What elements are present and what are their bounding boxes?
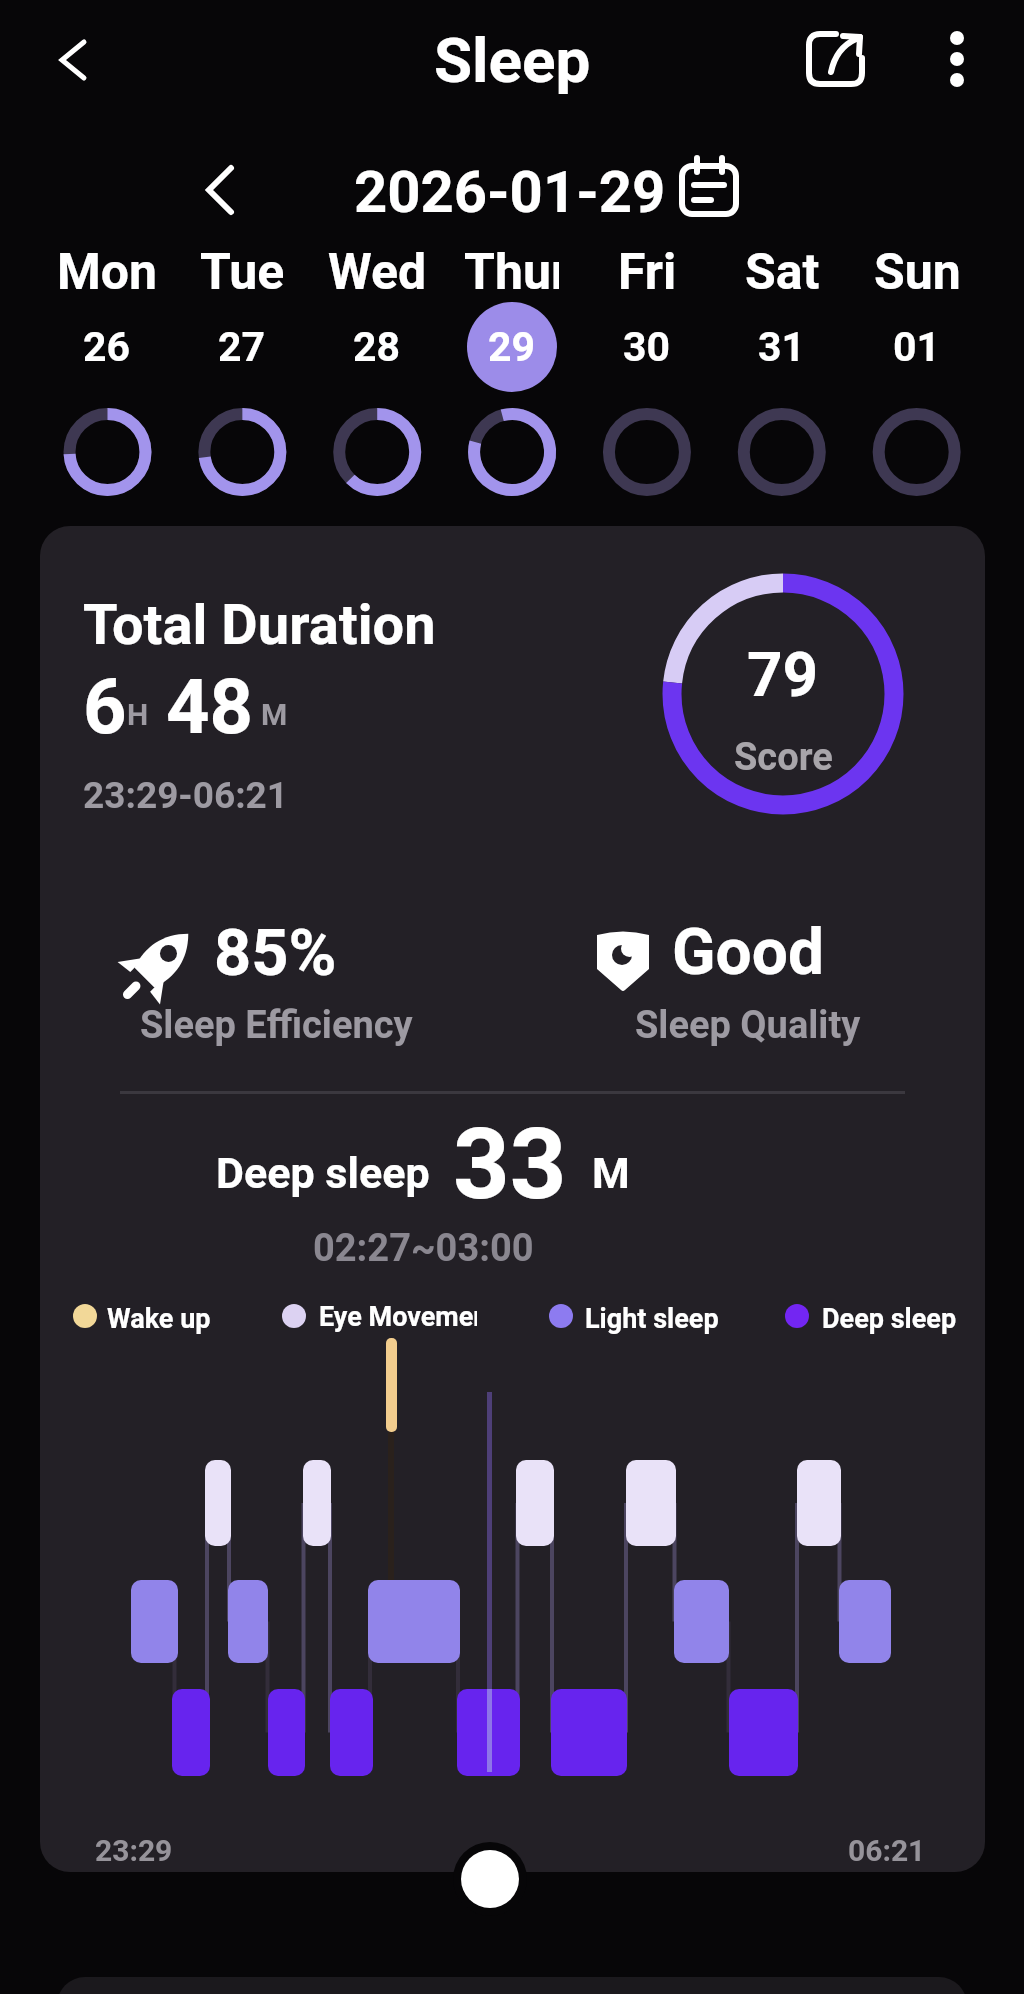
button[interactable]: Fri	[579, 243, 714, 392]
button[interactable]: Thur	[444, 243, 579, 392]
staticText: 85%	[214, 915, 337, 991]
staticText: 79	[747, 638, 819, 711]
staticText: Sun	[874, 243, 961, 302]
staticText: 2026-01-29	[354, 158, 666, 226]
button[interactable]	[40, 28, 104, 92]
staticText: 48	[166, 662, 254, 751]
button[interactable]: Sat	[714, 243, 849, 392]
staticText: 27	[218, 323, 266, 371]
staticText: Wed	[328, 243, 427, 302]
button[interactable]	[925, 24, 989, 94]
staticText: Deep sleep	[822, 1303, 957, 1335]
staticText: 23:29	[95, 1833, 173, 1868]
staticText: Thur	[464, 243, 559, 302]
staticText: 33	[453, 1106, 567, 1222]
button[interactable]: Tue	[174, 243, 309, 392]
button[interactable]: Sun	[849, 243, 984, 392]
staticText: Sleep	[434, 24, 591, 97]
button[interactable]	[455, 1844, 525, 1914]
staticText: Sleep Efficiency	[140, 1003, 413, 1048]
staticText: Deep sleep	[216, 1148, 430, 1198]
button[interactable]	[190, 158, 254, 222]
staticText: Total Duration	[83, 592, 436, 658]
staticText: Mon	[57, 243, 158, 302]
staticText: 29	[488, 323, 536, 371]
button[interactable]	[800, 24, 870, 94]
staticText: 30	[623, 323, 671, 371]
staticText: Light sleep	[585, 1303, 719, 1335]
button[interactable]: Mon	[40, 243, 174, 392]
button[interactable]	[350, 150, 750, 230]
staticText: Score	[734, 735, 833, 780]
staticText: Tue	[200, 243, 285, 302]
staticText: 06:21	[848, 1833, 926, 1868]
staticText: Fri	[618, 243, 677, 302]
staticText: Wake up	[107, 1303, 211, 1335]
staticText: 28	[353, 323, 401, 371]
staticText: H	[127, 697, 149, 732]
staticText: Eye Movement	[319, 1301, 477, 1333]
staticText: 23:29-06:21	[83, 774, 289, 817]
staticText: 26	[83, 323, 131, 371]
button[interactable]: Wed	[309, 243, 444, 392]
staticText: Sat	[745, 243, 820, 302]
staticText: Good	[672, 915, 825, 990]
button[interactable]	[40, 526, 985, 1872]
staticText: 02:27~03:00	[313, 1226, 534, 1271]
staticText: M	[592, 1148, 630, 1198]
button[interactable]	[670, 155, 746, 225]
staticText: 01	[893, 323, 941, 371]
staticText: 6	[83, 662, 127, 751]
staticText: Sleep Quality	[635, 1003, 861, 1048]
staticText: M	[261, 697, 288, 732]
staticText: 31	[758, 323, 806, 371]
